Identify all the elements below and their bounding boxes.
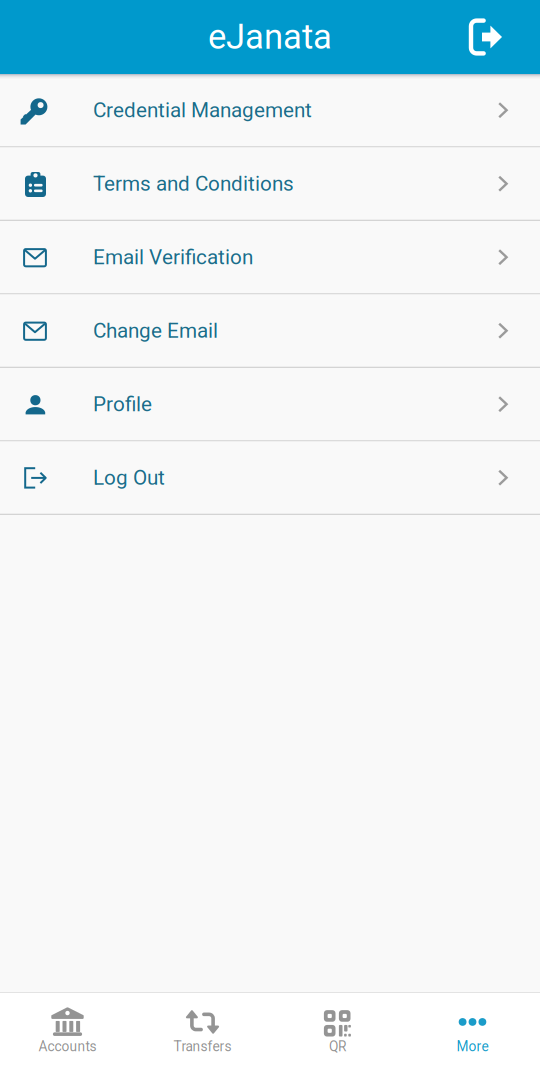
button[interactable]: Email Verification (0, 221, 540, 293)
staticText: Terms and Conditions (93, 171, 294, 196)
staticText: Accounts (38, 1038, 96, 1055)
staticText: Change Email (93, 318, 218, 343)
button[interactable]: QR (270, 992, 405, 1067)
staticText: Transfers (173, 1038, 231, 1055)
staticText: Email Verification (93, 245, 253, 269)
button[interactable]: Log Out (0, 441, 540, 514)
button[interactable]: Transfers (135, 992, 270, 1067)
staticText: eJanata (208, 17, 332, 57)
staticText: QR (329, 1038, 346, 1055)
button[interactable]: More (405, 992, 540, 1067)
staticText: Profile (93, 392, 152, 416)
button[interactable]: Credential Management (0, 74, 540, 146)
staticText: Log Out (93, 465, 165, 490)
staticText: Credential Management (93, 98, 312, 122)
button[interactable]: Log out (459, 11, 511, 63)
staticText: More (456, 1038, 488, 1055)
button[interactable]: Accounts (0, 992, 135, 1067)
button[interactable]: Change Email (0, 294, 540, 367)
button[interactable]: Profile (0, 368, 540, 440)
button[interactable]: Terms and Conditions (0, 147, 540, 220)
